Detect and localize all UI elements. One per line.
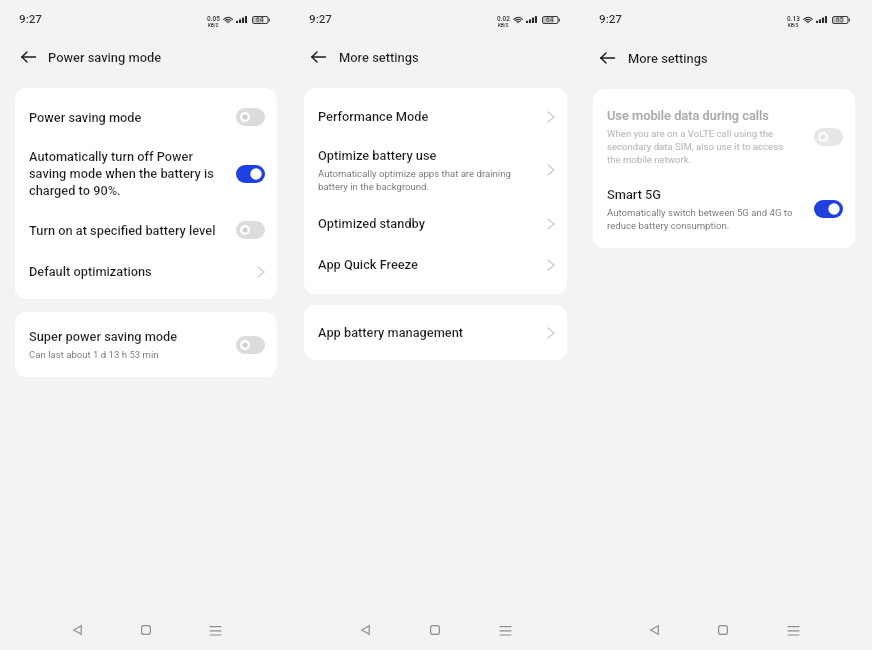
staticText: App Quick Freeze [318,256,418,273]
staticText: Turn on at specified battery level [29,222,216,239]
staticText: Optimized standby [318,215,425,232]
button[interactable]: Recent apps [489,614,521,646]
staticText: Super power saving mode [29,328,178,345]
staticText: 0.05 [207,15,220,23]
staticText: Power saving mode [29,109,142,126]
button[interactable]: Turn on at specified battery level [29,210,265,250]
button[interactable]: Back [17,46,39,68]
button[interactable]: Optimize battery use [318,136,555,204]
staticText: 9:27 [599,13,623,26]
staticText: More settings [628,50,708,67]
staticText: 65 [836,17,844,24]
staticText: Optimize battery use [318,147,437,164]
staticText: More settings [339,49,419,66]
staticText: Automatically switch between 5G and 4G t… [607,206,798,232]
button[interactable]: Optimized standby [318,204,555,243]
staticText: KB/S [208,23,219,28]
button[interactable]: Home [707,614,739,646]
button[interactable]: Back [307,46,329,68]
button[interactable]: Back [349,614,381,646]
button[interactable]: Performance Mode [318,97,555,136]
staticText: App battery management [318,324,464,341]
button[interactable]: Power saving mode [29,97,265,137]
button[interactable]: App Quick Freeze [318,243,555,282]
staticText: 0.02 [497,15,510,23]
staticText: 9:27 [19,13,43,26]
staticText: Performance Mode [318,108,429,125]
staticText: Automatically optimize apps that are dra… [318,167,525,193]
button[interactable]: Back [638,614,670,646]
button[interactable]: App battery management [318,313,555,352]
button[interactable]: Automatically turn off Power saving mode… [29,137,265,210]
staticText: Power saving mode [48,49,162,66]
staticText: 64 [256,17,264,24]
staticText: KB/S [788,23,799,28]
button[interactable]: Recent apps [777,614,809,646]
button[interactable]: Use mobile data during calls [607,94,843,176]
staticText: Smart 5G [607,186,662,203]
button[interactable]: Home [419,614,451,646]
staticText: Use mobile data during calls [607,107,769,124]
button[interactable]: Home [130,614,162,646]
button[interactable]: Back [61,614,93,646]
staticText: Default optimizations [29,263,152,280]
button[interactable]: Smart 5G [607,176,843,244]
staticText: Automatically turn off Power saving mode… [29,148,224,199]
button[interactable]: Super power saving mode [29,317,265,372]
staticText: 64 [546,17,554,24]
button[interactable]: Default optimizations [29,250,265,289]
button[interactable]: Recent apps [199,614,231,646]
staticText: When you are on a VoLTE call using the s… [607,127,798,166]
staticText: 9:27 [309,13,333,26]
staticText: 0.13 [787,15,800,23]
button[interactable]: Back [596,47,618,69]
staticText: Can last about 1 d 13 h 53 min [29,348,159,361]
staticText: KB/S [498,23,509,28]
